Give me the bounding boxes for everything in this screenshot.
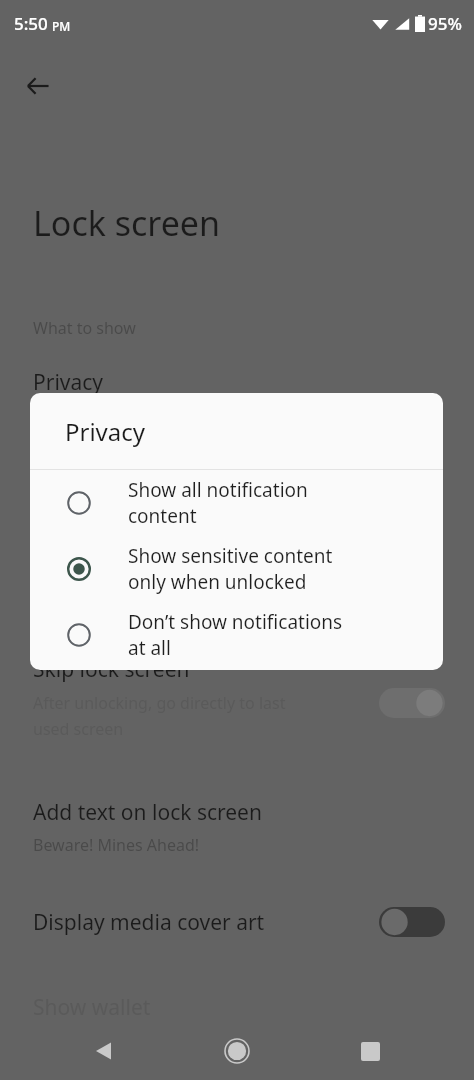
- button[interactable]: Recent apps: [341, 1022, 399, 1080]
- staticText: Privacy: [33, 368, 104, 397]
- button[interactable]: Show sensitive content only when unlocke…: [30, 536, 443, 602]
- button[interactable]: Toggle: [379, 686, 445, 720]
- staticText: Beware! Mines Ahead!: [33, 834, 200, 856]
- staticText: Add text on lock screen: [33, 798, 262, 827]
- button[interactable]: Toggle: [379, 905, 445, 939]
- staticText: Don’t show notifications at all: [128, 609, 343, 661]
- button[interactable]: Display media cover art: [0, 890, 474, 960]
- staticText: 95%: [428, 12, 462, 35]
- staticText: Display media cover art: [33, 908, 265, 937]
- staticText: Show sensitive content only when unlocke…: [128, 543, 333, 595]
- button[interactable]: Don’t show notifications at all: [30, 602, 443, 668]
- button[interactable]: Back: [75, 1022, 133, 1080]
- staticText: What to show: [33, 317, 136, 339]
- staticText: Privacy: [65, 415, 146, 448]
- staticText: Show all notification content: [128, 477, 308, 529]
- button[interactable]: Show all notification content: [30, 470, 443, 536]
- staticText: Skip lock screen: [33, 655, 190, 684]
- staticText: Lock screen: [33, 200, 221, 246]
- button[interactable]: Back: [16, 64, 60, 108]
- staticText: 5:50: [14, 12, 48, 35]
- button[interactable]: Home: [208, 1022, 266, 1080]
- staticText: PM: [52, 18, 71, 34]
- button[interactable]: Add text on lock screen: [0, 780, 474, 870]
